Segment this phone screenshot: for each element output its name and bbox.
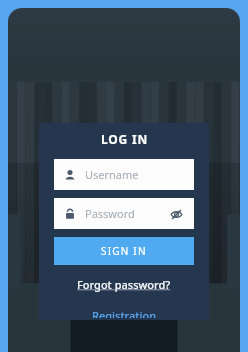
button[interactable]: SIGN IN: [54, 237, 194, 265]
button[interactable]: Password: [54, 198, 194, 229]
staticText: Registration: [92, 308, 157, 318]
staticText: Forgot password?: [77, 277, 171, 292]
button[interactable]: Registration: [86, 306, 163, 320]
button[interactable]: Show password: [168, 206, 184, 222]
button[interactable]: Username: [54, 159, 194, 190]
button[interactable]: Forgot password?: [71, 275, 177, 294]
staticText: SIGN IN: [101, 244, 147, 258]
staticText: LOG IN: [101, 131, 148, 147]
staticText: Username: [85, 167, 139, 182]
staticText: Password: [85, 206, 168, 221]
